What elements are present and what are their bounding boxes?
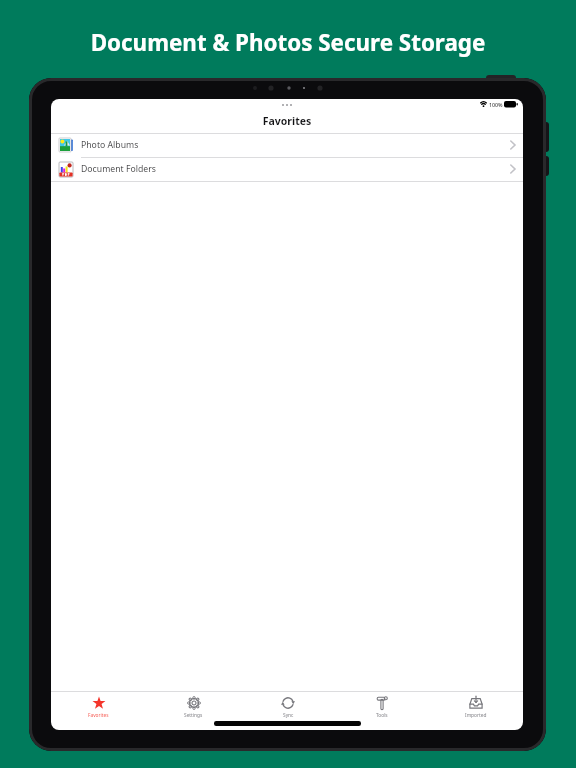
staticText: Tools (376, 712, 388, 719)
staticText: Photo Albums (81, 139, 139, 151)
staticText: Document Folders (81, 163, 156, 175)
staticText: 100% (489, 101, 503, 108)
button[interactable]: Settings (146, 691, 241, 730)
staticText: Favorites (88, 712, 109, 719)
staticText: Imported (465, 712, 487, 719)
button[interactable]: Imported (429, 691, 523, 730)
button[interactable]: Tools (335, 691, 429, 730)
button[interactable]: Favorites (51, 691, 146, 730)
button[interactable]: Photo Albums (51, 133, 523, 157)
button[interactable]: Sync (241, 691, 335, 730)
staticText: Document & Photos Secure Storage (0, 27, 576, 58)
staticText: Favorites (51, 114, 523, 128)
button[interactable]: Document Folders (51, 157, 523, 181)
staticText: Settings (184, 712, 203, 719)
staticText: Sync (283, 712, 294, 719)
